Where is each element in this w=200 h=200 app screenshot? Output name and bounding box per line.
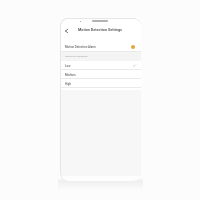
button[interactable]: High <box>61 79 141 88</box>
button[interactable]: Motion Detection Alarm <box>61 39 141 54</box>
staticText: Medium <box>65 73 76 76</box>
staticText: Motion Detection Alarm <box>65 45 96 48</box>
button[interactable]: Medium <box>61 70 141 79</box>
staticText: High <box>65 82 72 85</box>
button[interactable]: Back <box>62 22 71 39</box>
button[interactable]: Low <box>61 61 141 70</box>
staticText: Select the sensitivity <box>65 55 88 58</box>
staticText: Motion Detection Settings <box>78 28 122 32</box>
staticText: Low <box>65 64 71 67</box>
button[interactable]: Back <box>61 21 141 38</box>
